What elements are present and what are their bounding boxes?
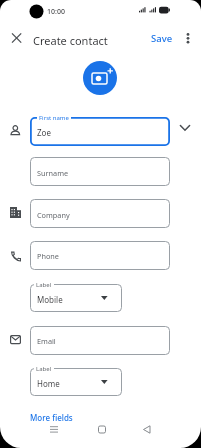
staticText: Label bbox=[36, 281, 52, 289]
button[interactable] bbox=[30, 241, 170, 270]
button[interactable] bbox=[139, 421, 155, 437]
button[interactable] bbox=[176, 119, 194, 137]
staticText: Company bbox=[37, 210, 70, 220]
staticText: Zoe bbox=[37, 127, 51, 138]
staticText: First name bbox=[39, 114, 69, 122]
button[interactable]: More fields bbox=[30, 412, 73, 423]
staticText: Surname bbox=[37, 168, 69, 178]
button[interactable]: Save bbox=[148, 29, 176, 48]
staticText: Home bbox=[37, 378, 60, 389]
button[interactable] bbox=[8, 29, 26, 47]
staticText: Create contact bbox=[33, 33, 108, 48]
staticText: Label bbox=[36, 365, 52, 373]
button[interactable] bbox=[181, 29, 195, 47]
button[interactable] bbox=[46, 421, 62, 437]
button[interactable] bbox=[30, 199, 170, 228]
staticText: Mobile bbox=[37, 294, 63, 305]
button[interactable] bbox=[30, 157, 170, 186]
button[interactable] bbox=[30, 117, 170, 146]
staticText: Email bbox=[37, 336, 56, 346]
button[interactable] bbox=[94, 421, 110, 437]
button[interactable] bbox=[30, 326, 170, 355]
button[interactable] bbox=[30, 368, 122, 396]
staticText: 10:00 bbox=[47, 7, 65, 17]
button[interactable] bbox=[83, 61, 117, 95]
staticText: Save bbox=[151, 32, 173, 45]
button[interactable] bbox=[30, 284, 122, 312]
staticText: Phone bbox=[37, 251, 59, 261]
staticText: More fields bbox=[30, 412, 73, 423]
